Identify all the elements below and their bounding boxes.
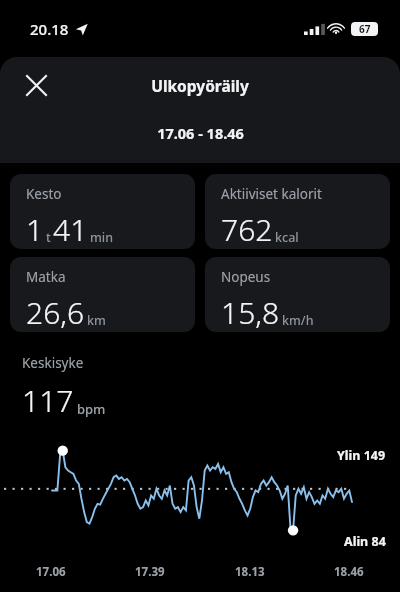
staticText: Aktiiviset kalorit: [221, 185, 322, 203]
button[interactable]: Close: [14, 63, 58, 107]
staticText: Kesto: [26, 185, 62, 203]
button[interactable]: Kesto: [10, 174, 195, 249]
staticText: Alin 84: [344, 533, 386, 550]
staticText: Keskisyke: [22, 354, 84, 372]
staticText: km/h: [282, 312, 314, 329]
staticText: 17.06: [36, 564, 66, 580]
staticText: 17.39: [135, 564, 165, 580]
staticText: Ylin 149: [337, 447, 386, 464]
staticText: t: [46, 229, 51, 246]
staticText: 41: [53, 209, 88, 249]
staticText: 67: [359, 22, 371, 36]
staticText: km: [87, 312, 106, 329]
staticText: min: [90, 229, 114, 246]
staticText: 15,8: [221, 292, 280, 332]
staticText: 18.46: [334, 564, 364, 580]
staticText: Nopeus: [221, 268, 271, 286]
staticText: 762: [221, 209, 273, 249]
staticText: Ulkopyöräily: [151, 75, 249, 96]
staticText: 17.06 - 18.46: [157, 123, 244, 143]
staticText: Matka: [26, 268, 66, 286]
button[interactable]: Aktiiviset kalorit: [205, 174, 390, 249]
staticText: 26,6: [26, 292, 85, 332]
staticText: 1: [26, 209, 44, 249]
staticText: 117: [22, 380, 74, 421]
staticText: 18.13: [235, 564, 265, 580]
staticText: 20.18: [30, 19, 69, 39]
staticText: bpm: [77, 400, 106, 418]
button[interactable]: Nopeus: [205, 257, 390, 332]
button[interactable]: Matka: [10, 257, 195, 332]
staticText: kcal: [275, 229, 299, 246]
